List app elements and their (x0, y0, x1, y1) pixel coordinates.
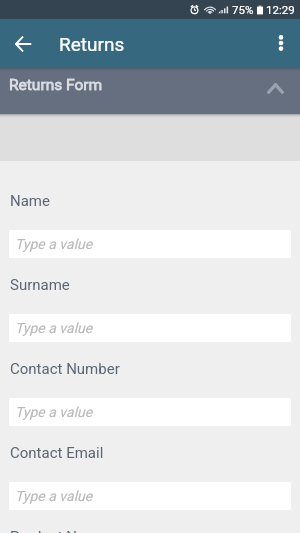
staticText: Returns (59, 33, 125, 55)
staticText: Contact Email (10, 444, 104, 462)
staticText: Name (10, 192, 50, 210)
staticText: 12:29 (266, 3, 295, 16)
staticText: 75% (232, 3, 254, 16)
button[interactable]: Back (7, 27, 39, 59)
staticText: Surname (10, 276, 70, 294)
button[interactable]: Returns Form (0, 67, 300, 114)
button[interactable]: More options (265, 27, 297, 59)
staticText: Type a value (15, 320, 93, 336)
button[interactable]: Type a value (9, 482, 291, 510)
staticText: Contact Number (10, 360, 120, 378)
staticText: Returns Form (9, 76, 103, 94)
staticText: Type a value (15, 236, 93, 252)
button[interactable]: Type a value (9, 398, 291, 426)
staticText: Product Name (10, 528, 107, 533)
staticText: Type a value (15, 404, 93, 420)
button[interactable]: Type a value (9, 230, 291, 258)
staticText: Type a value (15, 488, 93, 504)
button[interactable]: Type a value (9, 314, 291, 342)
